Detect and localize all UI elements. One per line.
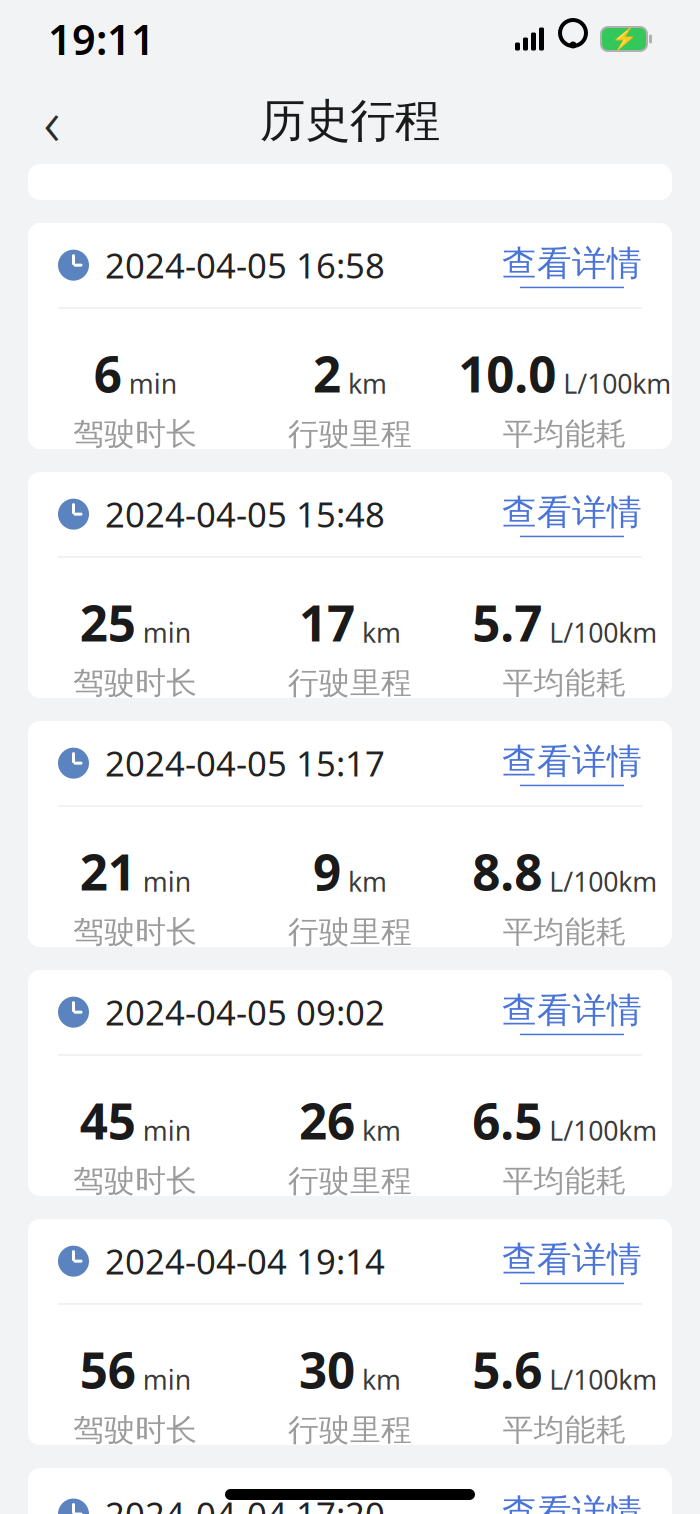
staticText: 驾驶时长 [73,1162,197,1200]
staticText: 45 [80,1088,136,1153]
staticText: 驾驶时长 [73,913,197,951]
staticText: 驾驶时长 [73,1411,197,1449]
staticText: 26 [299,1088,355,1153]
staticText: km [362,615,401,650]
staticText: 平均能耗 [503,664,627,702]
staticText: 2 [313,341,341,406]
staticText: 19:11 [48,12,155,66]
staticText: min [129,366,177,401]
button[interactable]: 2024-04-05 15:48 [0,472,700,698]
staticText: L/100km [549,615,657,650]
staticText: 10.0 [458,341,556,406]
staticText: 查看详情 [502,1238,642,1281]
staticText: 30 [299,1337,355,1402]
button[interactable]: 2024-04-04 17:20 [0,1468,700,1514]
staticText: min [143,1362,191,1397]
button[interactable]: 2024-04-04 19:14 [0,1219,700,1445]
staticText: 5.7 [472,590,542,655]
staticText: 21 [80,839,136,904]
button[interactable]: 2024-04-05 16:58 [0,223,700,449]
staticText: 查看详情 [502,740,642,783]
staticText: 行驶里程 [288,664,412,702]
staticText: 9 [313,839,341,904]
staticText: 驾驶时长 [73,664,197,702]
staticText: 查看详情 [502,989,642,1032]
staticText: 6.5 [472,1088,542,1153]
staticText: min [143,1113,191,1148]
staticText: ‹ [43,78,60,163]
staticText: 2024-04-05 15:17 [105,740,385,786]
staticText: 2024-04-04 17:20 [105,1491,385,1514]
staticText: 行驶里程 [288,1162,412,1200]
button[interactable]: 查看详情 [502,989,642,1035]
staticText: 8.8 [472,839,542,904]
staticText: min [143,615,191,650]
staticText: ⚡ [610,27,637,51]
button[interactable]: 2024-04-05 15:17 [0,721,700,947]
staticText: 查看详情 [502,1491,642,1514]
staticText: 5.6 [472,1337,542,1402]
staticText: 查看详情 [502,491,642,534]
staticText: 平均能耗 [503,1411,627,1449]
staticText: 行驶里程 [288,1411,412,1449]
staticText: 2024-04-05 15:48 [105,491,385,537]
staticText: 2024-04-05 09:02 [105,989,385,1035]
staticText: 25 [80,590,136,655]
staticText: 平均能耗 [503,415,627,453]
staticText: km [348,366,387,401]
staticText: 56 [80,1337,136,1402]
button[interactable]: 查看详情 [502,740,642,786]
staticText: 17 [299,590,355,655]
staticText: km [362,1113,401,1148]
staticText: L/100km [549,1113,657,1148]
staticText: min [143,864,191,899]
staticText: km [348,864,387,899]
staticText: L/100km [549,864,657,899]
staticText: 6 [94,341,122,406]
staticText: L/100km [549,1362,657,1397]
button[interactable]: 查看详情 [502,242,642,288]
staticText: 驾驶时长 [73,415,197,453]
staticText: 行驶里程 [288,913,412,951]
button[interactable]: 查看详情 [502,1238,642,1284]
staticText: 行驶里程 [288,415,412,453]
staticText: 2024-04-05 16:58 [105,242,385,288]
staticText: 平均能耗 [503,1162,627,1200]
button[interactable]: 查看详情 [502,1491,642,1514]
button[interactable]: 查看详情 [502,491,642,537]
staticText: km [362,1362,401,1397]
button[interactable]: Back [20,89,84,153]
staticText: L/100km [563,366,671,401]
staticText: 2024-04-04 19:14 [105,1238,385,1284]
staticText: 历史行程 [260,93,440,149]
staticText: 查看详情 [502,242,642,285]
staticText: 平均能耗 [503,913,627,951]
button[interactable]: 2024-04-05 09:02 [0,970,700,1196]
